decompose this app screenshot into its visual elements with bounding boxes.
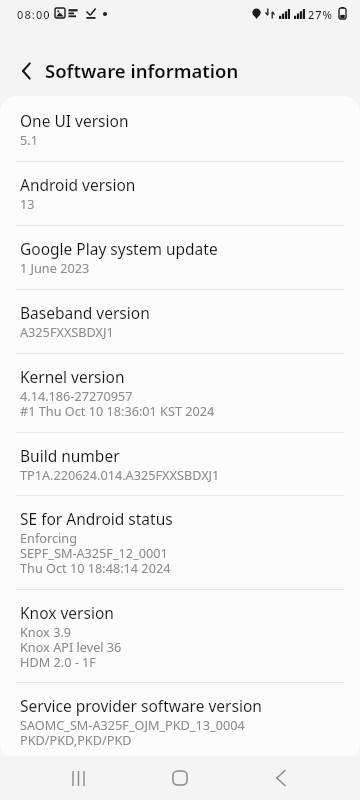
button[interactable]: Build number	[0, 433, 360, 495]
staticText: SEPF_SM-A325F_12_0001	[20, 544, 168, 561]
staticText: 13	[20, 195, 35, 212]
staticText: Kernel version	[20, 366, 125, 387]
button[interactable]: Google Play system update	[0, 226, 360, 289]
staticText: 4.14.186-27270957	[20, 387, 133, 404]
button[interactable]: Baseband version	[0, 290, 360, 353]
staticText: 5.1	[20, 131, 38, 148]
staticText: #1 Thu Oct 10 18:36:01 KST 2024	[20, 402, 215, 419]
staticText: SE for Android status	[20, 508, 173, 529]
staticText: 27%	[308, 7, 333, 22]
staticText: TP1A.220624.014.A325FXXSBDXJ1	[20, 466, 220, 483]
staticText: Android version	[20, 174, 136, 195]
staticText: Enforcing	[20, 529, 77, 546]
button[interactable]: Navigate up	[7, 51, 47, 91]
staticText: 08:00	[17, 7, 51, 22]
button[interactable]: Service provider software version	[0, 683, 360, 761]
staticText: HDM 2.0 - 1F	[20, 653, 96, 670]
staticText: Google Play system update	[20, 238, 218, 259]
staticText: Baseband version	[20, 302, 150, 323]
staticText: Software information	[45, 58, 239, 83]
button[interactable]: Recent apps	[56, 756, 101, 800]
staticText: Service provider software version	[20, 695, 262, 716]
staticText: SAOMC_SM-A325F_OJM_PKD_13_0004	[20, 716, 245, 733]
button[interactable]: Knox version	[0, 590, 360, 682]
staticText: A325FXXSBDXJ1	[20, 323, 114, 340]
button[interactable]: Kernel version	[0, 354, 360, 432]
button[interactable]: Back	[258, 756, 303, 800]
staticText: Knox API level 36	[20, 638, 122, 655]
button[interactable]: SE for Android status	[0, 496, 360, 589]
staticText: PKD/PKD,PKD/PKD	[20, 731, 132, 748]
button[interactable]: Home	[157, 756, 202, 800]
staticText: Thu Oct 10 18:48:14 2024	[20, 559, 171, 576]
staticText: One UI version	[20, 110, 129, 131]
staticText: Knox 3.9	[20, 623, 72, 640]
button[interactable]: One UI version	[0, 96, 360, 161]
staticText: 1 June 2023	[20, 259, 90, 276]
button[interactable]: Android version	[0, 162, 360, 225]
staticText: Build number	[20, 445, 120, 466]
staticText: Knox version	[20, 602, 114, 623]
